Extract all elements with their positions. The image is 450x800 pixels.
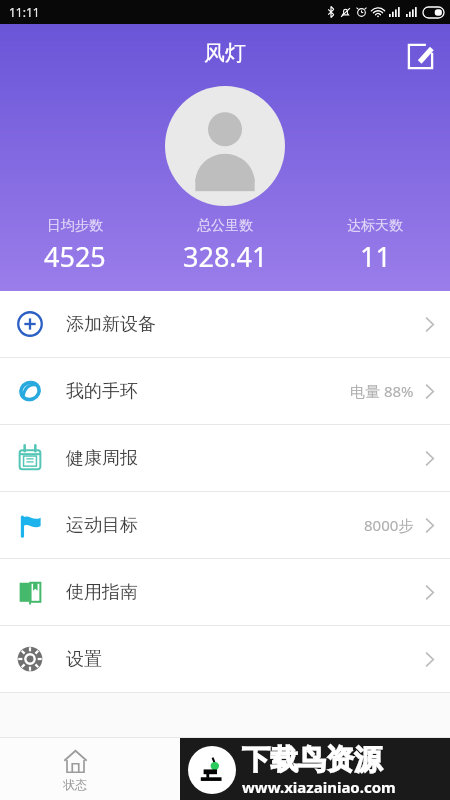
staticText: 总公里数 [197, 217, 253, 235]
staticText: 我的手环 [66, 380, 138, 403]
button[interactable]: 健康周报 [0, 425, 450, 492]
staticText: 11:11 [9, 4, 40, 20]
staticText: 状态 [63, 777, 87, 792]
staticText: www.xiazainiao.com [242, 777, 396, 797]
button[interactable]: 添加新设备 [0, 291, 450, 358]
button[interactable]: 使用指南 [0, 559, 450, 626]
staticText: 328.41 [183, 238, 268, 275]
staticText: 电量 88% [350, 381, 414, 401]
staticText: 达标天数 [347, 217, 403, 235]
staticText: 下载鸟资源 [242, 742, 382, 777]
staticText: 设置 [66, 648, 102, 671]
button[interactable]: 状态 [0, 738, 150, 800]
button[interactable]: 设置 [0, 626, 450, 693]
staticText: 使用指南 [66, 581, 138, 604]
staticText: 添加新设备 [66, 313, 156, 336]
button[interactable]: 运动目标 [0, 492, 450, 559]
staticText: 运动目标 [66, 514, 138, 537]
staticText: 风灯 [0, 40, 450, 66]
staticText: 日均步数 [47, 217, 103, 235]
staticText: 8000步 [364, 515, 414, 535]
button[interactable]: Edit [396, 32, 444, 80]
button[interactable]: 我的手环 [0, 358, 450, 425]
button[interactable]: Profile avatar [165, 86, 285, 206]
staticText: 4525 [44, 238, 106, 275]
staticText: 11 [360, 238, 391, 275]
staticText: 健康周报 [66, 447, 138, 470]
